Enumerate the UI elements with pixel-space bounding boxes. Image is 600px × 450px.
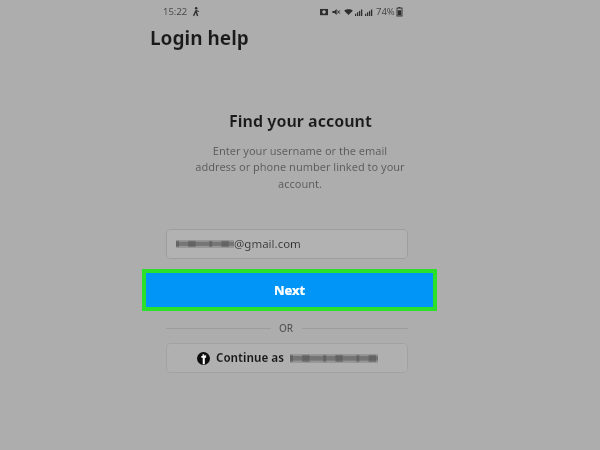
button[interactable]: Next: [146, 273, 433, 307]
staticText: 74%: [376, 5, 395, 18]
staticText: Enter your username or the email address…: [195, 143, 405, 192]
staticText: Continue as: [216, 350, 284, 366]
staticText: Find your account: [229, 110, 372, 132]
staticText: 15:22: [163, 5, 188, 18]
staticText: OR: [279, 321, 294, 335]
staticText: Next: [274, 281, 306, 299]
staticText: @gmail.com: [234, 236, 301, 252]
button[interactable]: @gmail.com: [166, 229, 408, 259]
staticText: Login help: [150, 25, 249, 51]
button[interactable]: Facebook: [166, 343, 408, 373]
other: Facebook: [197, 352, 210, 365]
